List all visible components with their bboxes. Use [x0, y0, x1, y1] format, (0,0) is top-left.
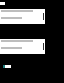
button[interactable] [0, 39, 45, 54]
button[interactable] [0, 9, 45, 24]
button[interactable] [3, 64, 11, 68]
